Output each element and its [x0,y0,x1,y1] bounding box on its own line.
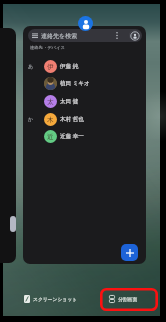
staticText: か [28,116,34,122]
staticText: 近 [47,133,54,141]
staticText: 木村 哲也 [60,115,84,123]
staticText: 連絡先を検索 [41,32,78,40]
button[interactable]: Account [129,30,140,41]
button[interactable]: 連絡先を検索 [23,26,146,264]
button[interactable]: 分割画面 [109,292,138,305]
button[interactable] [0,28,16,263]
button[interactable]: Contacts app [78,16,93,31]
staticText: 太 [47,98,54,106]
staticText: 太田 健 [60,97,79,105]
staticText: 伊 [47,63,54,71]
button[interactable]: か [23,111,146,127]
button[interactable]: 植田 ミキオ [23,75,146,91]
staticText: 近藤 幸一 [60,132,84,140]
button[interactable]: スクリーンショット [24,292,78,305]
button[interactable]: あ [23,58,146,74]
button[interactable]: 太 [23,93,146,109]
staticText: 分割画面 [118,296,138,302]
button[interactable]: Create contact [121,244,138,261]
staticText: 木 [47,116,54,124]
button[interactable]: 連絡先を検索 [28,29,142,42]
staticText: 連絡先・デバイス [30,45,65,50]
staticText: あ [28,63,34,69]
staticText: 植田 ミキオ [60,79,90,87]
staticText: 伊藤 純 [60,62,79,70]
button[interactable]: More options [113,30,121,41]
button[interactable]: 近 [23,128,146,144]
staticText: スクリーンショット [33,296,78,302]
